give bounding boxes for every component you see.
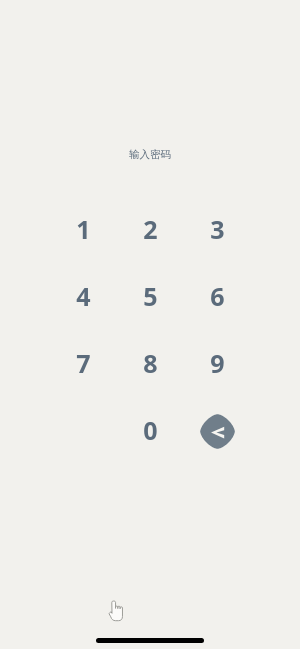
button[interactable]: Backspace [184, 396, 251, 463]
staticText: 9 [210, 346, 225, 380]
button[interactable]: 9 [184, 329, 251, 396]
staticText: 3 [210, 212, 225, 246]
staticText: 1 [76, 212, 91, 246]
button[interactable]: 6 [184, 262, 251, 329]
button[interactable]: 3 [184, 195, 251, 262]
button[interactable]: 0 [117, 396, 184, 463]
staticText: 4 [76, 279, 91, 313]
staticText: 5 [143, 279, 158, 313]
staticText: 0 [143, 413, 158, 447]
button[interactable]: 1 [50, 195, 117, 262]
staticText: 8 [143, 346, 158, 380]
staticText: 2 [143, 212, 158, 246]
button[interactable]: 8 [117, 329, 184, 396]
button[interactable]: 4 [50, 262, 117, 329]
staticText: 7 [76, 346, 91, 380]
staticText: 6 [210, 279, 225, 313]
button[interactable]: 5 [117, 262, 184, 329]
button[interactable]: 2 [117, 195, 184, 262]
staticText: 输入密码 [129, 148, 171, 161]
button[interactable]: 7 [50, 329, 117, 396]
